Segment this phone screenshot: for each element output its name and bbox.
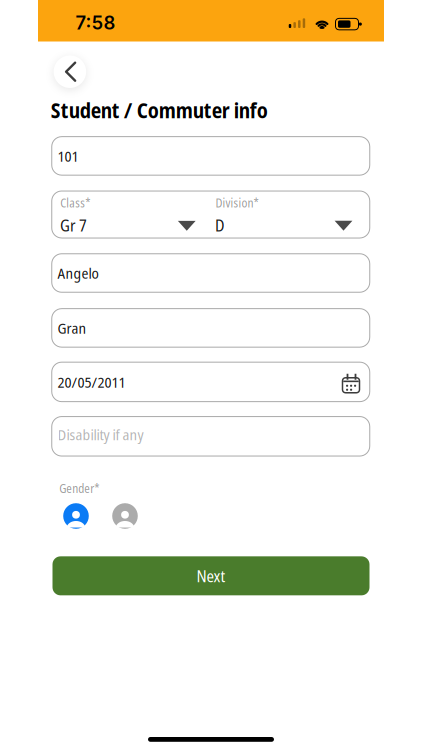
- staticText: Class*: [60, 195, 90, 211]
- staticText: D: [215, 214, 225, 236]
- button[interactable]: 101: [52, 137, 370, 175]
- staticText: Student / Commuter info: [51, 96, 268, 124]
- button[interactable]: Date of birth: [52, 362, 370, 402]
- button[interactable]: Class and Division: [52, 191, 370, 238]
- staticText: Angelo: [57, 263, 98, 283]
- button[interactable]: Gran: [52, 309, 370, 347]
- staticText: Next: [196, 565, 225, 587]
- staticText: 7:58: [75, 12, 115, 34]
- button[interactable]: Female: [112, 503, 138, 529]
- staticText: Gr 7: [60, 214, 87, 236]
- staticText: Gran: [57, 318, 86, 338]
- staticText: Division*: [215, 195, 258, 211]
- staticText: Disability if any: [57, 424, 143, 445]
- staticText: 101: [57, 146, 78, 166]
- staticText: 20/05/2011: [57, 372, 125, 392]
- staticText: Gender*: [59, 480, 99, 496]
- button[interactable]: Back: [54, 55, 86, 88]
- button[interactable]: Angelo: [52, 254, 370, 292]
- button[interactable]: Next: [52, 556, 369, 595]
- button[interactable]: Disability if any: [52, 417, 370, 456]
- button[interactable]: Male: [63, 503, 89, 529]
